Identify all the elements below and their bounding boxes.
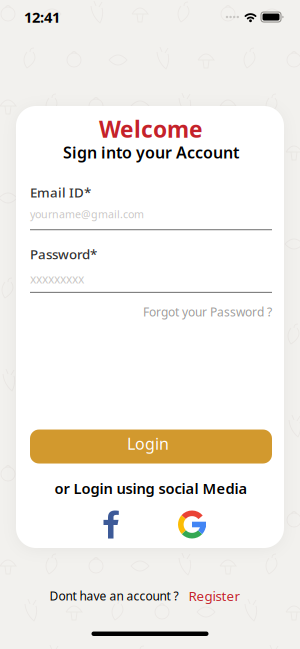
- staticText: or Login using social Media: [54, 478, 247, 498]
- button[interactable]: Email ID: [30, 183, 272, 230]
- staticText: Forgot your Password ?: [143, 304, 272, 320]
- staticText: yourname@gmail.com: [30, 207, 144, 221]
- staticText: Login: [127, 433, 169, 454]
- staticText: 12:41: [24, 7, 60, 27]
- staticText: Sign into your Account: [63, 142, 239, 163]
- button[interactable]: Register: [188, 587, 240, 605]
- staticText: xxxxxxxxx: [30, 271, 84, 287]
- button[interactable]: Login: [30, 429, 272, 463]
- staticText: Register: [188, 587, 240, 605]
- staticText: Password*: [30, 245, 97, 263]
- button[interactable]: Forgot your Password ?: [143, 304, 272, 320]
- button[interactable]: Password: [30, 245, 272, 293]
- staticText: Dont have an account ?: [49, 588, 178, 604]
- button[interactable]: Login with Google: [177, 510, 206, 539]
- button[interactable]: Login with Facebook: [102, 510, 120, 538]
- staticText: Email ID*: [30, 183, 91, 201]
- staticText: Welcome: [99, 114, 203, 144]
